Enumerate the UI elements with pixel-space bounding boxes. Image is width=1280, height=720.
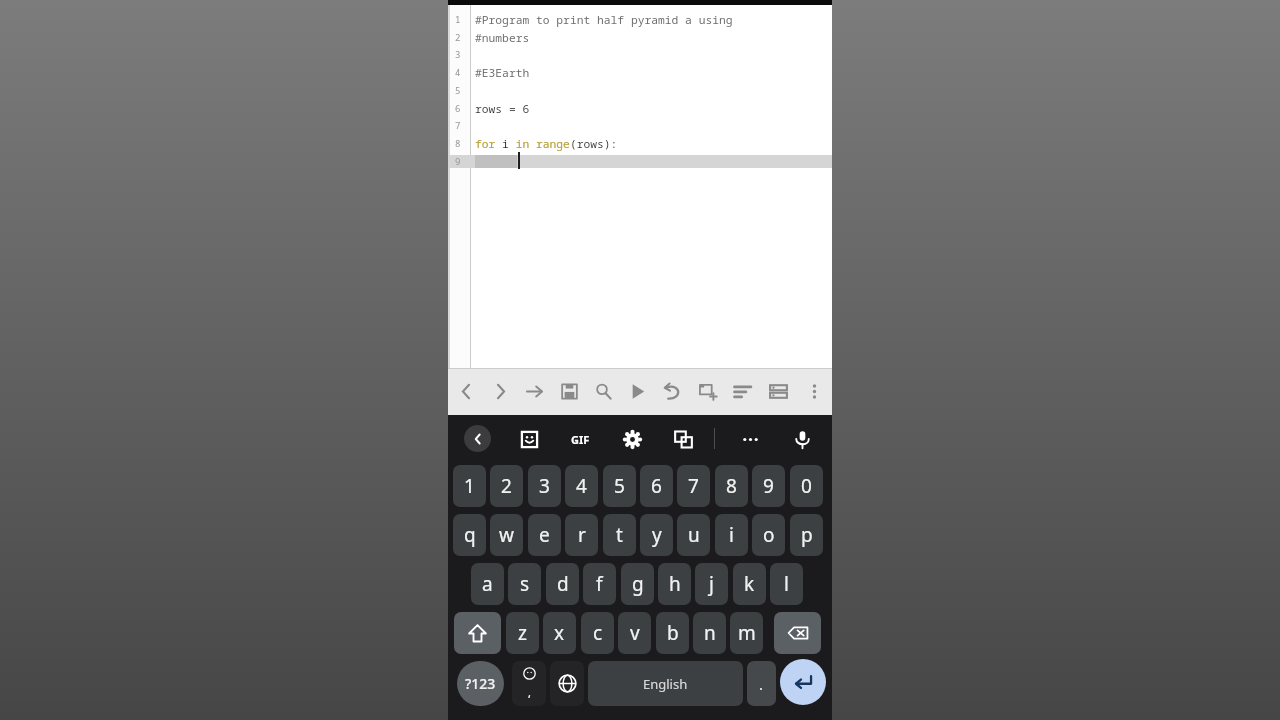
staticText: b (667, 620, 679, 646)
button[interactable]: w (490, 514, 523, 556)
staticText: 8 (726, 473, 737, 499)
staticText: 3 (455, 48, 461, 60)
button[interactable]: Save (552, 368, 586, 415)
button[interactable]: m (730, 612, 763, 654)
button[interactable]: s (508, 563, 541, 605)
staticText: x (554, 620, 565, 646)
button[interactable]: 0 (790, 465, 823, 507)
button[interactable]: 9 (752, 465, 785, 507)
staticText: 6 (651, 473, 662, 499)
staticText: #numbers (475, 30, 530, 45)
button[interactable]: 4 (565, 465, 598, 507)
staticText: 7 (455, 119, 461, 131)
staticText: 3 (539, 473, 550, 499)
staticText: p (801, 522, 813, 548)
staticText: 7 (688, 473, 699, 499)
staticText: 8 (455, 137, 461, 149)
staticText: a (482, 571, 493, 597)
button[interactable]: o (752, 514, 785, 556)
button[interactable]: j (695, 563, 728, 605)
button[interactable]: Lines (761, 368, 795, 415)
staticText: 9 (763, 473, 774, 499)
staticText: v (630, 620, 640, 646)
button[interactable]: 3 (528, 465, 561, 507)
button[interactable]: r (565, 514, 598, 556)
button[interactable]: q (453, 514, 486, 556)
staticText: 4 (576, 473, 587, 499)
staticText: 2 (501, 473, 512, 499)
button[interactable]: c (581, 612, 614, 654)
staticText: e (539, 522, 550, 548)
staticText: q (464, 522, 476, 548)
button[interactable]: 2 (490, 465, 523, 507)
button[interactable]: Previous (449, 368, 483, 415)
staticText: 4 (455, 66, 461, 78)
button[interactable]: y (640, 514, 673, 556)
staticText: for i in range(rows): (475, 136, 618, 151)
staticText: 9 (455, 155, 461, 167)
button[interactable]: Next (483, 368, 517, 415)
button[interactable]: More options (735, 424, 765, 454)
button[interactable]: Backspace (774, 612, 821, 654)
button[interactable]: a (471, 563, 504, 605)
staticText: 1 (455, 13, 461, 25)
button[interactable]: . (747, 661, 776, 706)
button[interactable]: v (618, 612, 651, 654)
staticText: j (709, 571, 714, 597)
staticText: English (643, 675, 688, 693)
button[interactable]: English (588, 661, 743, 706)
staticText: u (688, 522, 700, 548)
button[interactable]: Stickers (514, 424, 544, 454)
staticText: #E3Earth (475, 65, 530, 80)
button[interactable]: g (621, 563, 654, 605)
staticText: 5 (455, 84, 461, 96)
button[interactable]: k (733, 563, 766, 605)
staticText: d (557, 571, 569, 597)
button[interactable]: ?123 (457, 661, 504, 706)
staticText: o (763, 522, 775, 548)
button[interactable]: x (543, 612, 576, 654)
staticText: 5 (614, 473, 625, 499)
button[interactable]: Enter (780, 659, 826, 705)
staticText: GIF (571, 432, 590, 447)
button[interactable]: Back (464, 425, 491, 452)
button[interactable]: h (658, 563, 691, 605)
button[interactable]: f (583, 563, 616, 605)
button[interactable]: p (790, 514, 823, 556)
staticText: i (729, 522, 734, 548)
button[interactable]: 7 (677, 465, 710, 507)
button[interactable]: Run (620, 368, 654, 415)
button[interactable]: l (770, 563, 803, 605)
button[interactable]: Tab (517, 368, 551, 415)
staticText: h (669, 571, 681, 597)
staticText: 2 (455, 31, 461, 43)
button[interactable]: 5 (603, 465, 636, 507)
button[interactable]: 1 (453, 465, 486, 507)
staticText: n (704, 620, 716, 646)
button[interactable]: Settings (617, 424, 647, 454)
button[interactable]: Shift (454, 612, 501, 654)
button[interactable]: Voice input (787, 424, 817, 454)
button[interactable]: u (677, 514, 710, 556)
button[interactable]: d (546, 563, 579, 605)
button[interactable]: Indent (725, 368, 759, 415)
button[interactable]: GIF (565, 424, 595, 454)
button[interactable]: e (528, 514, 561, 556)
button[interactable]: New file (690, 368, 724, 415)
button[interactable]: More options (797, 368, 831, 415)
button[interactable]: Emoji and comma (512, 661, 546, 706)
button[interactable]: i (715, 514, 748, 556)
button[interactable]: Undo (655, 368, 689, 415)
button[interactable]: b (656, 612, 689, 654)
button[interactable]: Change language (550, 661, 584, 706)
staticText: z (518, 620, 527, 646)
button[interactable]: Translate (668, 424, 698, 454)
button[interactable]: Search (586, 368, 620, 415)
button[interactable]: 6 (640, 465, 673, 507)
button[interactable]: 8 (715, 465, 748, 507)
button[interactable]: t (603, 514, 636, 556)
staticText: #Program to print half pyramid a using (475, 12, 733, 27)
button[interactable]: n (693, 612, 726, 654)
staticText: c (593, 620, 603, 646)
button[interactable]: z (506, 612, 539, 654)
